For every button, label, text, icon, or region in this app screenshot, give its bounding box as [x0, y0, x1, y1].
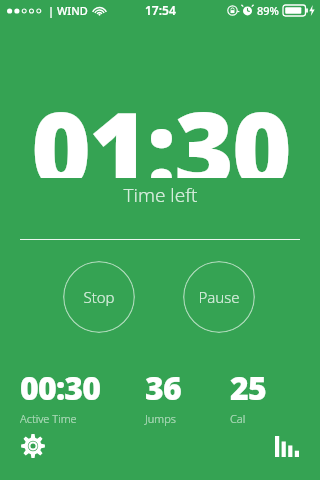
button[interactable]: 00:30	[20, 366, 101, 426]
staticText: 89%	[257, 3, 279, 18]
staticText: 36	[145, 366, 181, 410]
staticText: 01:30	[31, 78, 290, 178]
button[interactable]: Statistics	[268, 427, 306, 465]
staticText: Stop	[83, 287, 115, 307]
button[interactable]: Settings	[14, 427, 52, 465]
staticText: Jumps	[145, 411, 176, 426]
staticText: 17:54	[145, 2, 176, 18]
staticText: 00:30	[20, 366, 101, 410]
button[interactable]: Stop	[63, 261, 135, 333]
staticText: Active Time	[20, 411, 77, 426]
button[interactable]: Pause	[183, 261, 255, 333]
button[interactable]: 36	[145, 366, 181, 426]
staticText: 25	[230, 366, 266, 410]
staticText: | WIND	[48, 3, 88, 18]
staticText: Pause	[198, 287, 240, 307]
staticText: Cal	[230, 411, 246, 426]
button[interactable]: 25	[230, 366, 266, 426]
staticText: Time left	[123, 182, 198, 208]
